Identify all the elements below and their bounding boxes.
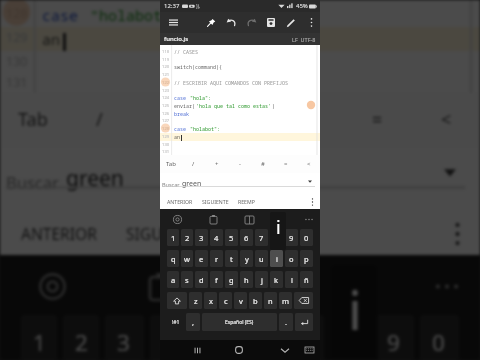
button[interactable]: 9 (285, 229, 298, 246)
button[interactable]: - (204, 93, 273, 147)
button[interactable]: x (204, 292, 217, 309)
button[interactable]: 5 (225, 229, 238, 246)
button[interactable]: More (426, 255, 468, 318)
button[interactable]: m (279, 292, 292, 309)
button[interactable]: Home (228, 340, 250, 360)
button[interactable]: REEMP (222, 210, 297, 255)
button[interactable]: Edit (281, 12, 301, 33)
button[interactable]: REEMP (234, 194, 259, 209)
button[interactable]: Pin (201, 12, 221, 33)
button[interactable]: 1 (21, 315, 57, 360)
button[interactable]: Emoji (30, 255, 72, 318)
button[interactable]: More (302, 209, 316, 230)
button[interactable]: Clipboard (206, 209, 220, 230)
button[interactable]: More options (301, 12, 321, 33)
button[interactable]: 5 (195, 315, 234, 360)
button[interactable]: SIGUIENTE (197, 194, 234, 209)
button[interactable] (295, 313, 313, 331)
button[interactable]: u (255, 250, 268, 267)
button[interactable]: < (297, 155, 320, 173)
button[interactable]: ANTERIOR (9, 210, 111, 255)
button[interactable]: 9 (375, 315, 414, 360)
button[interactable]: 4 (210, 229, 223, 246)
button[interactable]: + (135, 93, 204, 147)
button[interactable]: + (205, 155, 228, 173)
button[interactable]: 7 (255, 229, 268, 246)
button[interactable]: 2 (181, 229, 193, 246)
button[interactable]: f (210, 271, 223, 288)
button[interactable]: o (285, 250, 298, 267)
button[interactable]: p (300, 250, 313, 267)
button[interactable]: < (411, 93, 480, 147)
button[interactable]: Redo (241, 12, 261, 33)
button[interactable]: 0 (420, 315, 459, 360)
button[interactable]: Tab (160, 155, 182, 173)
button[interactable]: . (279, 313, 293, 331)
button[interactable]: Recent apps (186, 340, 208, 360)
button[interactable]: Search options (303, 173, 317, 189)
button[interactable]: Español (ES) (202, 313, 277, 331)
button[interactable]: Hide keyboard (274, 340, 296, 360)
button[interactable]: w (181, 250, 193, 267)
button[interactable]: Search options (429, 147, 471, 195)
button[interactable]: t (225, 250, 238, 267)
button[interactable]: Tab (0, 93, 66, 147)
button[interactable]: i (270, 250, 283, 267)
button[interactable] (294, 292, 313, 309)
staticText: Tab (166, 160, 176, 168)
button[interactable]: Menu (163, 12, 183, 33)
button[interactable]: More (306, 194, 318, 209)
button[interactable]: q (167, 250, 179, 267)
button[interactable]: 6 (240, 229, 253, 246)
button[interactable]: Emoji (170, 209, 184, 230)
button[interactable]: s (181, 271, 193, 288)
staticText: 125 (162, 103, 170, 109)
button[interactable]: / (182, 155, 205, 173)
button[interactable]: n (264, 292, 277, 309)
button[interactable]: b (249, 292, 262, 309)
button[interactable]: j (255, 271, 268, 288)
button[interactable]: ANTERIOR (163, 194, 197, 209)
button[interactable]: - (228, 155, 251, 173)
button[interactable]: 4 (150, 315, 189, 360)
button[interactable]: Undo (221, 12, 241, 33)
button[interactable]: Clipboard (138, 255, 180, 318)
button[interactable]: a (167, 271, 179, 288)
button[interactable]: 8 (270, 229, 283, 246)
button[interactable]: c (219, 292, 232, 309)
button[interactable]: y (240, 250, 253, 267)
button[interactable]: # (273, 93, 342, 147)
button[interactable]: v (234, 292, 247, 309)
button[interactable]: l (285, 271, 298, 288)
button[interactable]: k (270, 271, 283, 288)
button[interactable]: # (251, 155, 274, 173)
button[interactable]: = (274, 155, 297, 173)
button[interactable]: 6 (240, 315, 279, 360)
button[interactable]: 1 (167, 229, 179, 246)
button[interactable]: ñ (300, 271, 313, 288)
staticText: 7 (297, 327, 312, 357)
button[interactable]: g (225, 271, 238, 288)
button[interactable]: 3 (195, 229, 208, 246)
button[interactable]: 8 (330, 315, 369, 360)
button[interactable]: Switch input method (299, 340, 320, 360)
button[interactable]: !#1 (167, 313, 184, 331)
button[interactable]: r (210, 250, 223, 267)
button[interactable]: 3 (105, 315, 144, 360)
button[interactable]: Save (261, 12, 281, 33)
button[interactable]: z (189, 292, 202, 309)
button[interactable]: 7 (285, 315, 324, 360)
button[interactable]: , (186, 313, 200, 331)
button[interactable]: Translate (246, 255, 288, 318)
button[interactable]: 0 (300, 229, 313, 246)
button[interactable] (167, 292, 187, 309)
button[interactable]: e (195, 250, 208, 267)
button[interactable]: 2 (63, 315, 99, 360)
button[interactable]: More (438, 210, 474, 255)
button[interactable]: d (195, 271, 208, 288)
button[interactable]: h (240, 271, 253, 288)
button[interactable]: Translate (242, 209, 256, 230)
button[interactable]: SIGUIENTE (111, 210, 222, 255)
